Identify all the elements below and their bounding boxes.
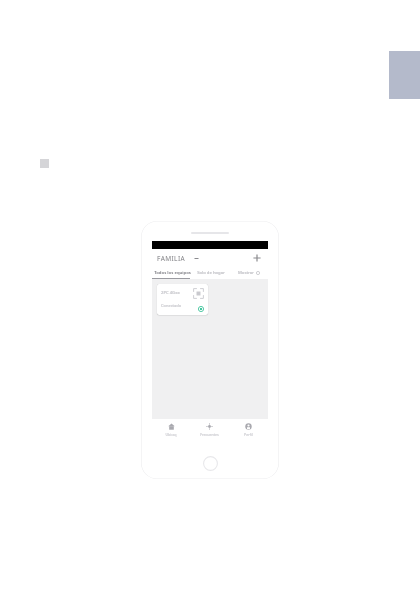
staticText: Todos los equipos (154, 270, 191, 276)
button[interactable]: Ubicaç (152, 419, 190, 441)
staticText: Conectado (161, 303, 182, 308)
staticText: Frecuentes (200, 432, 219, 437)
staticText: 2PC 4Gxx (161, 290, 180, 296)
button[interactable]: Perfil (229, 419, 268, 441)
staticText: Perfil (244, 432, 253, 437)
button[interactable]: Mostrar (230, 267, 268, 278)
button[interactable]: Frecuentes (190, 419, 229, 441)
staticText: FAMILIA (157, 254, 186, 263)
button[interactable]: 2PC 4Gxx (157, 284, 208, 315)
staticText: Ubicaç (165, 432, 177, 437)
staticText: Solo de hogar (197, 270, 225, 276)
button[interactable]: Inicio (203, 456, 218, 471)
button[interactable]: Solo de hogar (192, 267, 230, 278)
button[interactable]: Añadir (251, 252, 263, 264)
other: Estado activo (198, 306, 204, 312)
button[interactable]: FAMILIA (157, 254, 199, 263)
button[interactable]: Todos los equipos (152, 267, 192, 278)
staticText: Mostrar (238, 270, 254, 276)
button[interactable]: Escanear código QR (193, 288, 204, 299)
